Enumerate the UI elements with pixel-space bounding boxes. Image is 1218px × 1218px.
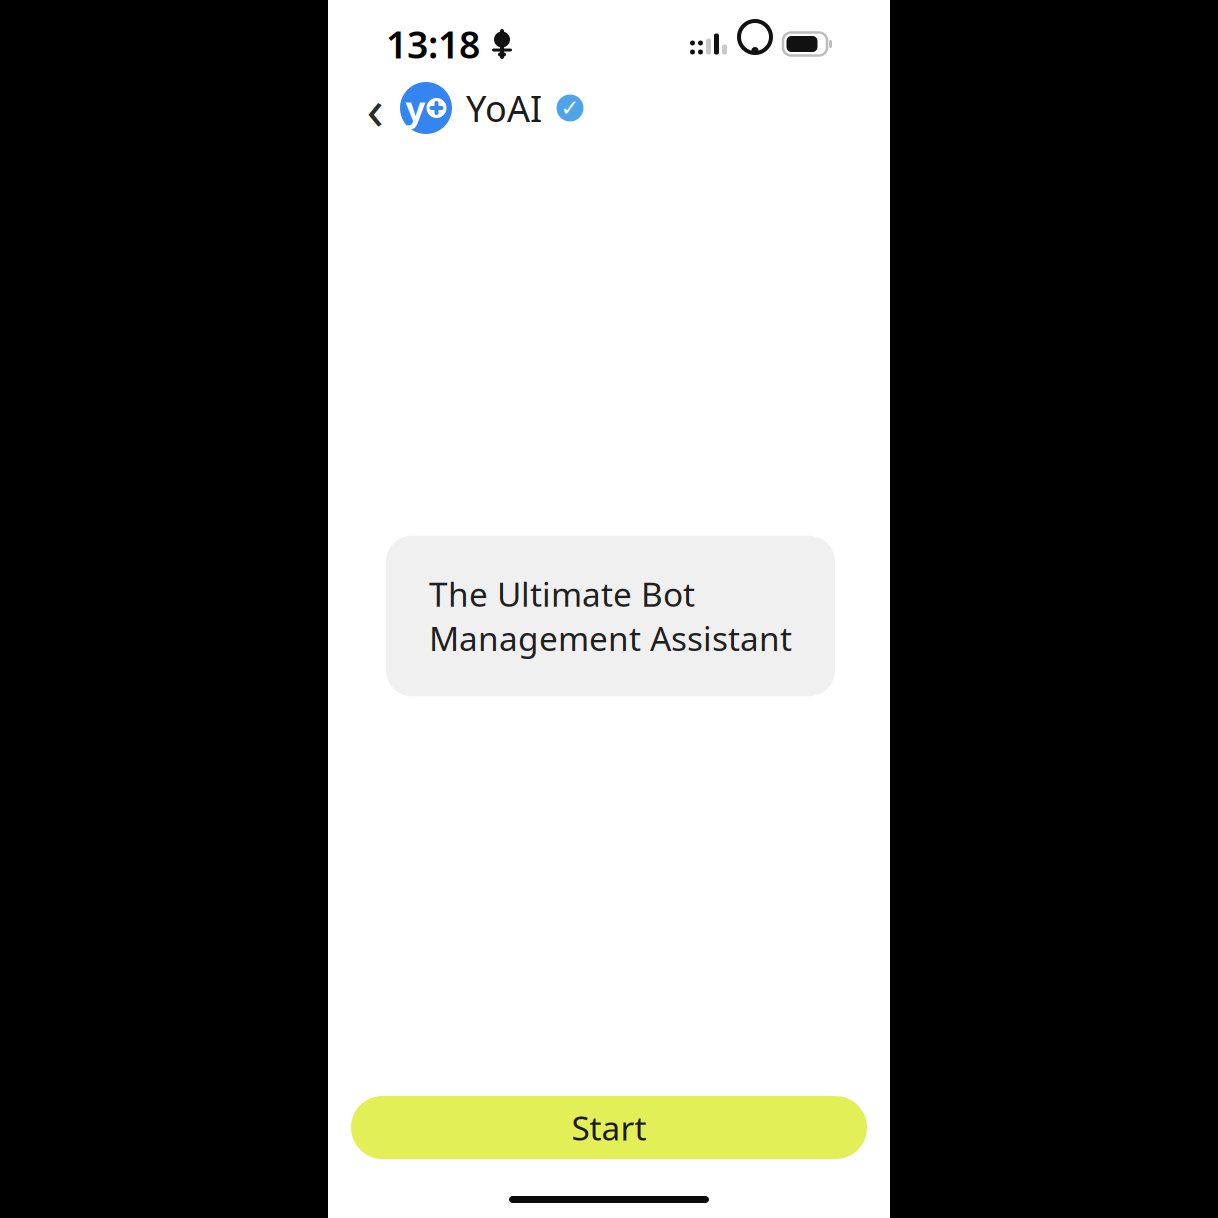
staticText: 13:18 (386, 19, 480, 69)
button[interactable]: Start (351, 1096, 867, 1159)
staticText: ✓ (560, 95, 579, 121)
button[interactable]: Back (356, 82, 394, 134)
button[interactable]: y (400, 82, 584, 134)
staticText: y (405, 85, 425, 131)
staticText: YoAI (466, 84, 542, 132)
staticText: Start (571, 1105, 646, 1150)
staticText: ‹ (366, 71, 383, 145)
staticText: The Ultimate Bot Management Assistant (429, 572, 792, 660)
